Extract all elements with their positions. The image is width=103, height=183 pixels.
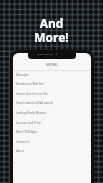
staticText: Messages <box>16 73 29 77</box>
staticText: And More! <box>0 15 103 46</box>
staticText: Sponsors and Prices <box>16 121 42 125</box>
button[interactable]: How to submit a DNA sample <box>13 98 91 108</box>
staticText: Contact Us <box>16 140 30 144</box>
button[interactable]: About <box>13 146 91 156</box>
staticText: How to submit a DNA sample <box>16 101 53 105</box>
button[interactable]: More FTMX Apps <box>13 127 91 137</box>
staticText: More FTMX Apps <box>16 130 38 134</box>
button[interactable]: Lending/Ready Motions <box>13 108 91 118</box>
staticText: MORE <box>46 62 58 67</box>
staticText: About <box>16 149 24 153</box>
staticText: Lending/Ready Motions <box>16 111 46 115</box>
button[interactable]: Shareburner Web Site <box>13 79 91 89</box>
button[interactable]: Messages <box>13 70 91 80</box>
button[interactable]: How to Care for Less Talk <box>13 89 91 99</box>
button[interactable]: Contact Us <box>13 137 91 147</box>
staticText: How to Care for Less Talk <box>16 92 48 96</box>
button[interactable]: Sponsors and Prices <box>13 118 91 128</box>
staticText: Shareburner Web Site <box>16 82 44 86</box>
